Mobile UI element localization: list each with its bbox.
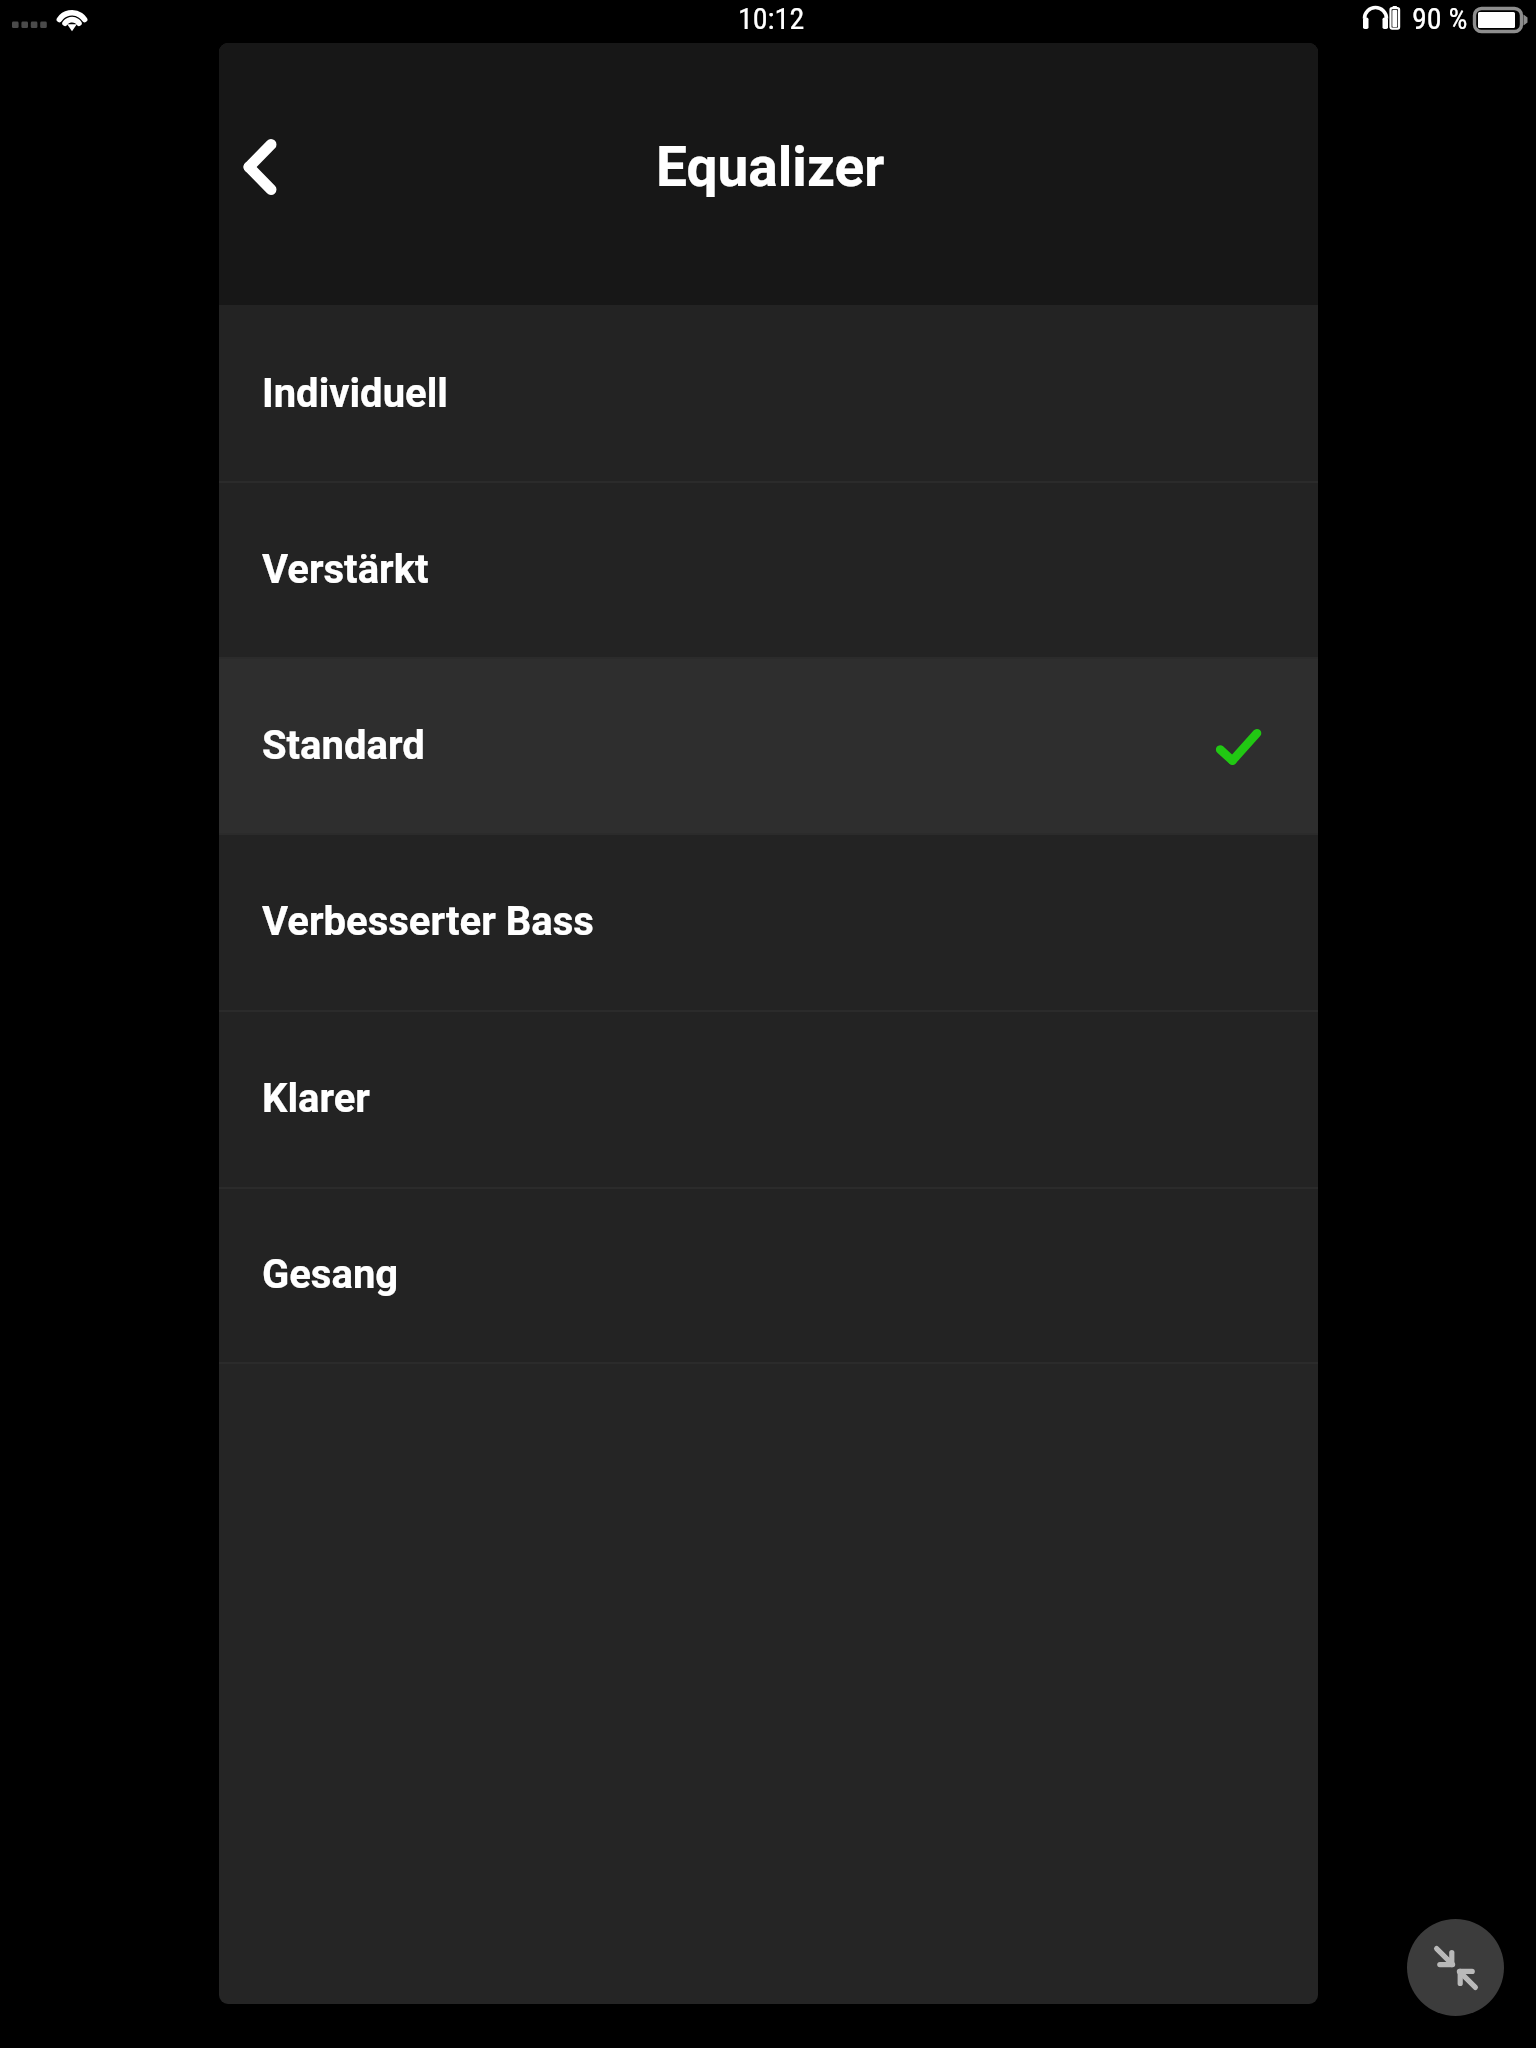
staticText: Verbesserter Bass: [262, 898, 594, 945]
button[interactable]: Verbesserter Bass: [219, 833, 1318, 1010]
staticText: 10:12: [738, 1, 805, 36]
button[interactable]: Verstärkt: [219, 481, 1318, 657]
staticText: Klarer: [262, 1075, 370, 1122]
button[interactable]: Standard: [219, 657, 1318, 833]
staticText: Verstärkt: [262, 546, 429, 593]
staticText: Individuell: [262, 370, 448, 417]
staticText: 90 %: [1412, 1, 1468, 36]
staticText: Gesang: [262, 1251, 399, 1298]
button[interactable]: Back: [220, 127, 300, 207]
button[interactable]: Gesang: [219, 1187, 1318, 1362]
staticText: Equalizer: [656, 135, 885, 199]
button[interactable]: Collapse: [1407, 1919, 1504, 2016]
staticText: Standard: [262, 722, 425, 769]
button[interactable]: Individuell: [219, 305, 1318, 481]
button[interactable]: Klarer: [219, 1010, 1318, 1187]
